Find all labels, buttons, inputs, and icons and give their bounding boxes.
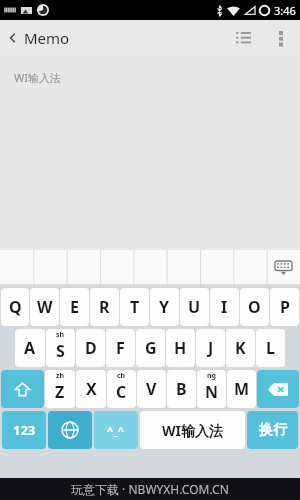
- staticText: Y: [159, 296, 170, 318]
- staticText: D: [85, 337, 97, 359]
- staticText: ^_^: [107, 423, 125, 438]
- button[interactable]: 换行: [247, 411, 298, 449]
- button[interactable]: R: [90, 288, 119, 326]
- button[interactable]: V: [137, 370, 166, 408]
- button[interactable]: ch: [107, 370, 136, 408]
- button[interactable]: W: [30, 288, 59, 326]
- staticText: L: [266, 337, 275, 359]
- staticText: P: [280, 296, 290, 318]
- staticText: N: [205, 381, 219, 403]
- staticText: C: [116, 381, 127, 403]
- button[interactable]: Switch language: [48, 411, 92, 449]
- button[interactable]: O: [240, 288, 269, 326]
- button[interactable]: J: [196, 329, 225, 367]
- button[interactable]: F: [106, 329, 135, 367]
- button[interactable]: H: [166, 329, 195, 367]
- button[interactable]: zh: [45, 370, 75, 408]
- button[interactable]: P: [270, 288, 299, 326]
- staticText: zh: [56, 371, 65, 381]
- staticText: T: [130, 296, 140, 318]
- staticText: G: [145, 337, 157, 359]
- staticText: WI输入法: [162, 421, 223, 440]
- button[interactable]: M: [227, 370, 256, 408]
- staticText: I: [221, 296, 228, 318]
- other: Back: [6, 31, 20, 45]
- staticText: K: [235, 337, 246, 359]
- button[interactable]: E: [60, 288, 89, 326]
- button[interactable]: X: [76, 370, 106, 408]
- button[interactable]: Y: [150, 288, 179, 326]
- button[interactable]: Backspace: [257, 370, 299, 408]
- staticText: WI输入法: [14, 70, 61, 85]
- staticText: Memo: [24, 28, 70, 48]
- button[interactable]: ^_^: [94, 411, 138, 449]
- button[interactable]: Q: [1, 288, 29, 326]
- staticText: A: [24, 337, 36, 359]
- button[interactable]: List view: [230, 25, 256, 51]
- button[interactable]: T: [120, 288, 149, 326]
- staticText: H: [174, 337, 187, 359]
- button[interactable]: 123: [2, 411, 46, 449]
- button[interactable]: Hide keyboard: [267, 250, 300, 285]
- button[interactable]: A: [15, 329, 45, 367]
- button[interactable]: ng: [197, 370, 226, 408]
- staticText: W: [37, 296, 53, 318]
- staticText: X: [86, 378, 97, 400]
- staticText: B: [176, 378, 187, 400]
- staticText: O: [248, 296, 261, 318]
- button[interactable]: D: [76, 329, 105, 367]
- staticText: U: [188, 296, 201, 318]
- staticText: J: [208, 337, 214, 359]
- staticText: 3:46: [274, 3, 296, 18]
- staticText: 123: [13, 421, 36, 439]
- staticText: Z: [55, 381, 65, 403]
- button[interactable]: Back: [6, 28, 70, 48]
- staticText: sh: [56, 330, 65, 340]
- staticText: ch: [117, 371, 126, 381]
- staticText: S: [56, 340, 65, 362]
- staticText: M: [234, 378, 250, 400]
- button[interactable]: U: [180, 288, 209, 326]
- button[interactable]: B: [167, 370, 196, 408]
- button[interactable]: L: [256, 329, 285, 367]
- button[interactable]: K: [226, 329, 255, 367]
- staticText: 玩意下载 · NBWYXH.COM.CN: [71, 481, 229, 497]
- button[interactable]: More options: [270, 27, 292, 49]
- staticText: Q: [9, 296, 22, 318]
- staticText: E: [70, 296, 79, 318]
- button[interactable]: sh: [46, 329, 75, 367]
- staticText: R: [99, 296, 110, 318]
- staticText: 换行: [259, 421, 287, 439]
- staticText: F: [116, 337, 125, 359]
- button[interactable]: I: [210, 288, 239, 326]
- button[interactable]: Shift: [1, 370, 44, 408]
- staticText: ng: [207, 371, 216, 381]
- button[interactable]: G: [136, 329, 165, 367]
- staticText: V: [146, 378, 157, 400]
- button[interactable]: WI输入法: [140, 411, 245, 449]
